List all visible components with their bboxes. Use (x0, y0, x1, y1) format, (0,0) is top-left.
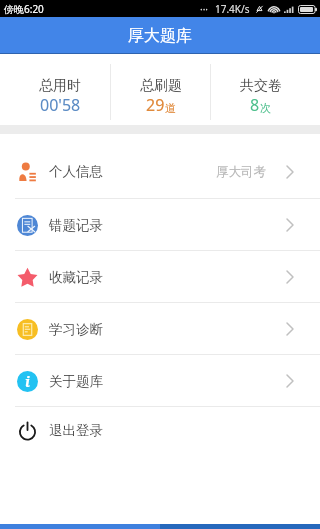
staticText: 道 (165, 101, 176, 115)
staticText: 个人信息 (49, 163, 103, 180)
staticText: 总用时 (39, 77, 81, 95)
button[interactable]: 总刷题 (111, 54, 210, 125)
staticText: 00'58 (40, 94, 81, 116)
staticText: 厚大司考 (216, 164, 266, 180)
staticText: ··· (200, 2, 209, 16)
button[interactable]: 收藏记录 (0, 251, 320, 303)
staticText: 关于题库 (49, 373, 103, 390)
staticText: 厚大题库 (128, 26, 192, 46)
staticText: 傍晚6:20 (4, 2, 44, 16)
button[interactable]: 学习诊断 (0, 303, 320, 355)
button[interactable]: 共交卷 (211, 54, 310, 125)
button[interactable]: 个人信息 (0, 134, 320, 199)
staticText: i (25, 372, 30, 391)
staticText: 共交卷 (240, 77, 282, 95)
staticText: 17.4K/s (215, 2, 250, 16)
staticText: 收藏记录 (49, 269, 103, 286)
staticText: 29 (146, 94, 165, 116)
staticText: 8 (250, 94, 260, 116)
staticText: 次 (260, 101, 271, 115)
button[interactable]: 总用时 (10, 54, 110, 125)
staticText: 总刷题 (140, 77, 182, 95)
button[interactable]: 错题记录 (0, 199, 320, 251)
staticText: 学习诊断 (49, 321, 103, 338)
button[interactable]: 退出登录 (0, 407, 320, 453)
staticText: 退出登录 (49, 422, 103, 439)
staticText: 错题记录 (49, 217, 103, 234)
button[interactable]: i (0, 355, 320, 407)
